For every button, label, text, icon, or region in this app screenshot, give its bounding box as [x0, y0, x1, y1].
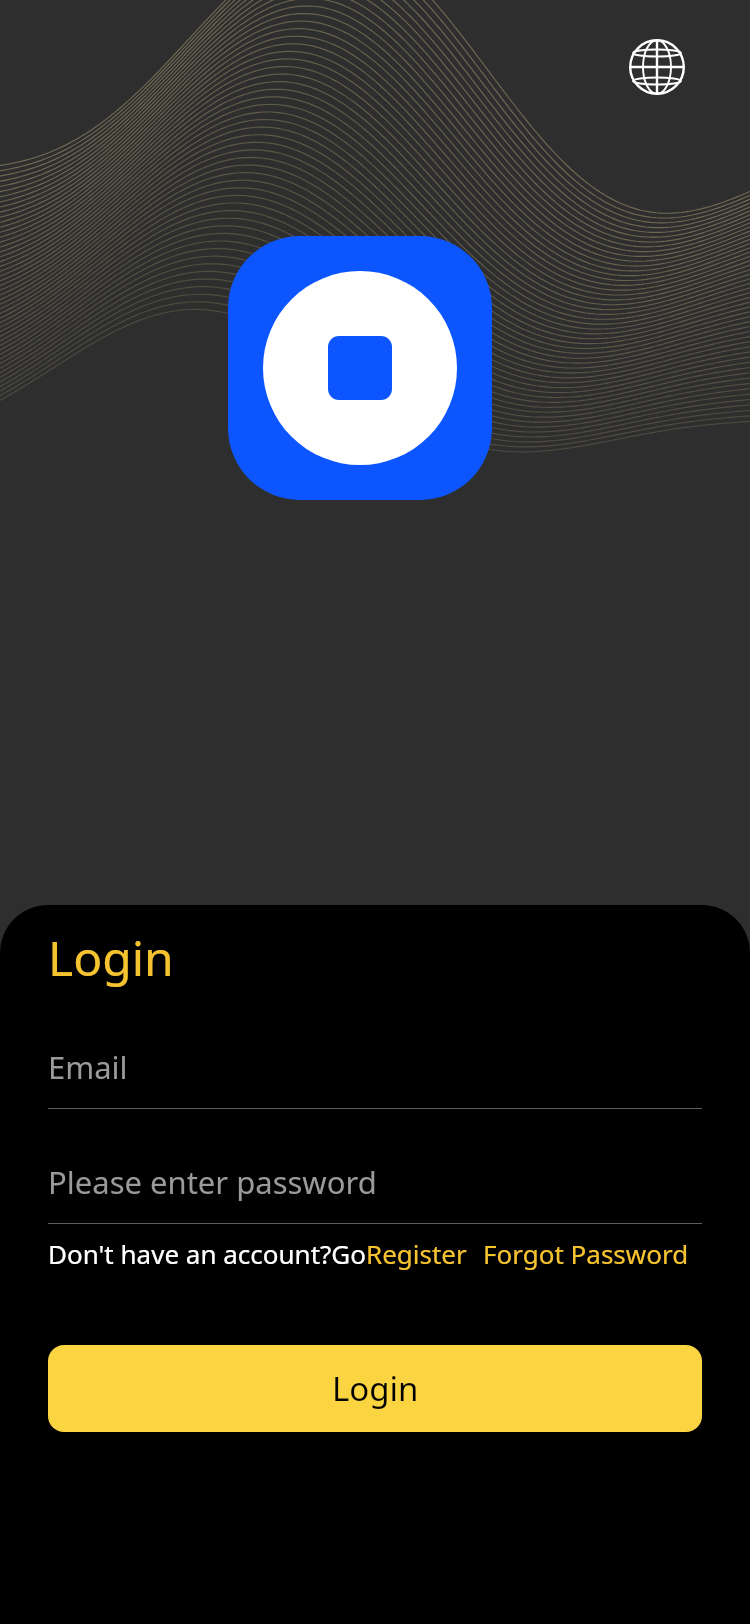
button[interactable]: Register [366, 1236, 467, 1271]
button[interactable]: Login [48, 1345, 702, 1432]
button[interactable]: Forgot Password [483, 1236, 689, 1271]
staticText: Forgot Password [483, 1236, 689, 1271]
staticText: Login [332, 1366, 419, 1411]
staticText: Register [366, 1236, 467, 1271]
staticText: Don't have an account?Go [48, 1236, 366, 1271]
button[interactable]: Email [48, 1046, 702, 1109]
staticText: Login [48, 925, 174, 990]
button[interactable]: Language [620, 30, 694, 104]
staticText: Email [48, 1046, 128, 1088]
staticText: Please enter password [48, 1161, 377, 1203]
button[interactable]: Please enter password [48, 1161, 702, 1224]
